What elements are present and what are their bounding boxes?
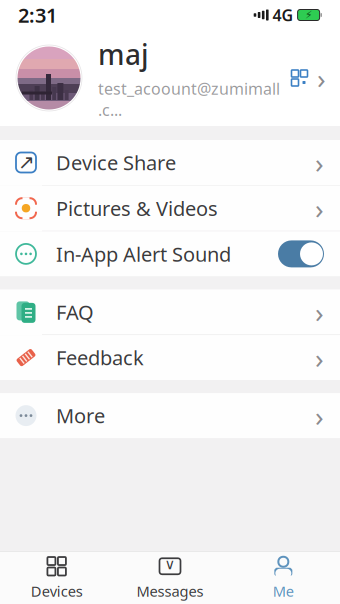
staticText: In-App Alert Sound: [56, 241, 231, 267]
staticText: 4G: [273, 4, 294, 26]
staticText: maj: [98, 36, 149, 73]
button[interactable]: Feedback: [0, 335, 340, 380]
button[interactable]: Me: [227, 552, 340, 604]
staticText: ⚡︎: [305, 9, 312, 21]
staticText: ↗: [18, 151, 35, 173]
staticText: ›: [317, 59, 326, 97]
button[interactable]: More: [0, 393, 340, 438]
staticText: test_acoount@zumimall.c...: [98, 78, 280, 120]
button[interactable]: maj: [0, 30, 340, 126]
staticText: More: [56, 402, 105, 429]
staticText: ›: [315, 190, 324, 227]
staticText: Device Share: [56, 149, 176, 176]
staticText: Pictures & Videos: [56, 195, 218, 221]
staticText: ›: [315, 397, 324, 434]
button[interactable]: ∨: [113, 552, 227, 604]
button[interactable]: Devices: [0, 552, 113, 604]
staticText: Feedback: [56, 344, 144, 371]
staticText: ›: [315, 293, 324, 330]
button[interactable]: FAQ: [0, 289, 340, 335]
staticText: Devices: [31, 581, 83, 601]
staticText: FAQ: [56, 299, 94, 325]
button[interactable]: Pictures & Videos: [0, 186, 340, 231]
staticText: ›: [315, 339, 324, 376]
staticText: ›: [315, 144, 324, 181]
button[interactable]: ↗: [0, 140, 340, 186]
staticText: 2:31: [18, 2, 57, 28]
staticText: Me: [273, 581, 294, 601]
staticText: ∨: [164, 556, 175, 572]
button[interactable]: In-App Alert Sound: [0, 231, 340, 276]
staticText: Messages: [136, 581, 203, 601]
